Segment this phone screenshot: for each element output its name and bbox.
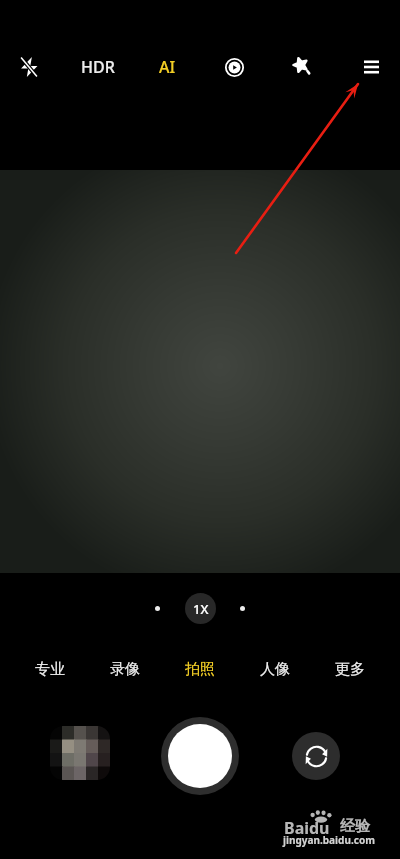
staticText: AI bbox=[159, 56, 176, 78]
button[interactable]: 人像 bbox=[257, 657, 293, 682]
staticText: 专业 bbox=[35, 660, 65, 679]
button[interactable]: AI bbox=[144, 44, 190, 90]
button[interactable]: HDR bbox=[75, 44, 121, 90]
staticText: jingyan.baidu.com bbox=[283, 833, 375, 847]
staticText: 更多 bbox=[335, 660, 365, 679]
button[interactable]: 专业 bbox=[32, 657, 68, 682]
button[interactable]: Take photo bbox=[161, 717, 239, 795]
staticText: HDR bbox=[81, 56, 115, 78]
staticText: 拍照 bbox=[185, 660, 215, 679]
button[interactable]: 更多 bbox=[332, 657, 368, 682]
button[interactable]: Motion photo bbox=[211, 44, 257, 90]
button[interactable]: Beauty filter bbox=[280, 44, 326, 90]
button[interactable]: 1X bbox=[185, 593, 216, 624]
button[interactable]: Flash off bbox=[6, 44, 52, 90]
button[interactable]: 拍照 bbox=[182, 657, 218, 682]
staticText: 人像 bbox=[260, 660, 290, 679]
button[interactable]: 录像 bbox=[107, 657, 143, 682]
staticText: 经验 bbox=[340, 817, 370, 836]
button[interactable]: Gallery bbox=[50, 726, 110, 780]
button[interactable]: Menu bbox=[348, 44, 394, 90]
staticText: 录像 bbox=[110, 660, 140, 679]
staticText: Baidu bbox=[284, 817, 330, 839]
button[interactable]: Switch camera bbox=[292, 732, 340, 780]
staticText: 1X bbox=[193, 600, 209, 618]
